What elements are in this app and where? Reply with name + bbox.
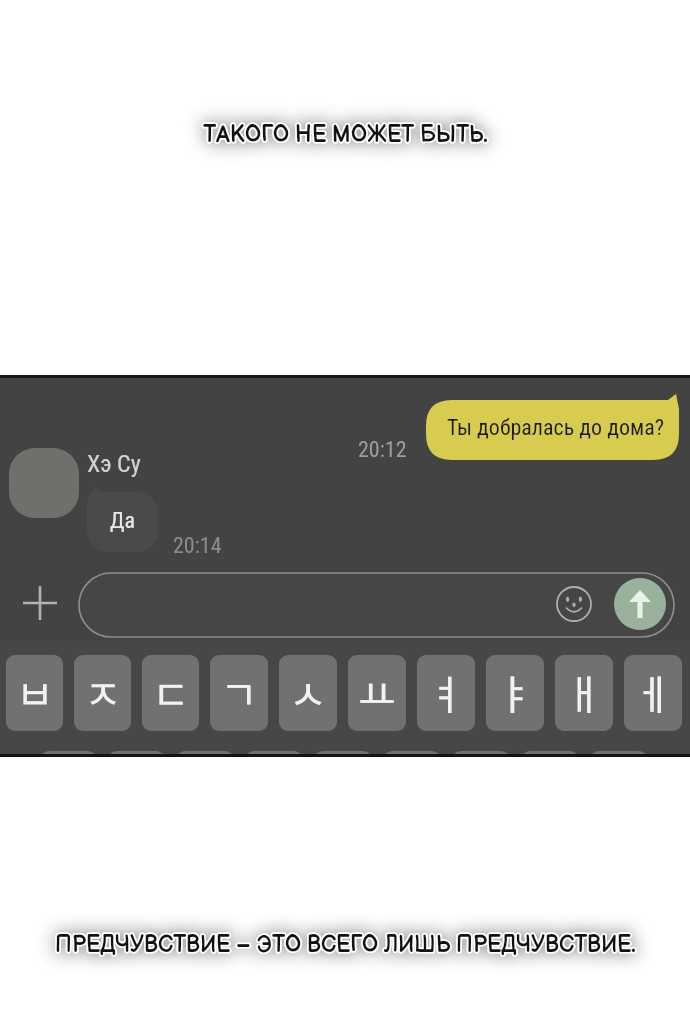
- button[interactable]: [314, 751, 372, 757]
- staticText: ㄱ: [220, 662, 258, 721]
- button[interactable]: ㅑ: [486, 655, 544, 731]
- button[interactable]: Profile photo: [9, 448, 79, 518]
- button[interactable]: ㅈ: [74, 655, 131, 731]
- button[interactable]: ㅐ: [555, 655, 613, 731]
- staticText: Ты добралась до дома?: [447, 415, 665, 441]
- staticText: ㅔ: [634, 662, 672, 721]
- button[interactable]: ㄷ: [142, 655, 199, 731]
- staticText: ㄷ: [152, 662, 190, 721]
- button[interactable]: Да: [87, 492, 158, 552]
- button[interactable]: [245, 751, 303, 757]
- button[interactable]: [521, 751, 579, 757]
- button[interactable]: ㅕ: [417, 655, 475, 731]
- button[interactable]: ㅂ: [6, 655, 63, 731]
- staticText: ㅈ: [84, 662, 122, 721]
- button[interactable]: Message input: [79, 573, 674, 637]
- button[interactable]: ㄱ: [210, 655, 268, 731]
- button[interactable]: Ты добралась до дома?: [426, 400, 679, 460]
- button[interactable]: [176, 751, 234, 757]
- button[interactable]: [40, 751, 97, 757]
- button[interactable]: Emoji: [556, 586, 592, 622]
- staticText: ㅕ: [427, 662, 465, 721]
- staticText: ㅐ: [565, 662, 603, 721]
- button[interactable]: ㅛ: [348, 655, 406, 731]
- staticText: ㅑ: [496, 662, 534, 721]
- button[interactable]: Send message: [614, 578, 666, 630]
- button[interactable]: ㅔ: [624, 655, 682, 731]
- button[interactable]: Add attachment: [18, 581, 62, 625]
- button[interactable]: [383, 751, 441, 757]
- staticText: ㅅ: [289, 662, 327, 721]
- staticText: Да: [110, 508, 136, 534]
- staticText: Хэ Су: [87, 450, 141, 478]
- staticText: 20:12: [358, 437, 407, 463]
- staticText: 20:14: [173, 533, 222, 559]
- button[interactable]: [108, 751, 165, 757]
- button[interactable]: ㅅ: [279, 655, 337, 731]
- button[interactable]: [590, 751, 648, 757]
- staticText: ㅛ: [358, 662, 396, 721]
- button[interactable]: [452, 751, 510, 757]
- staticText: ㅂ: [16, 662, 54, 721]
